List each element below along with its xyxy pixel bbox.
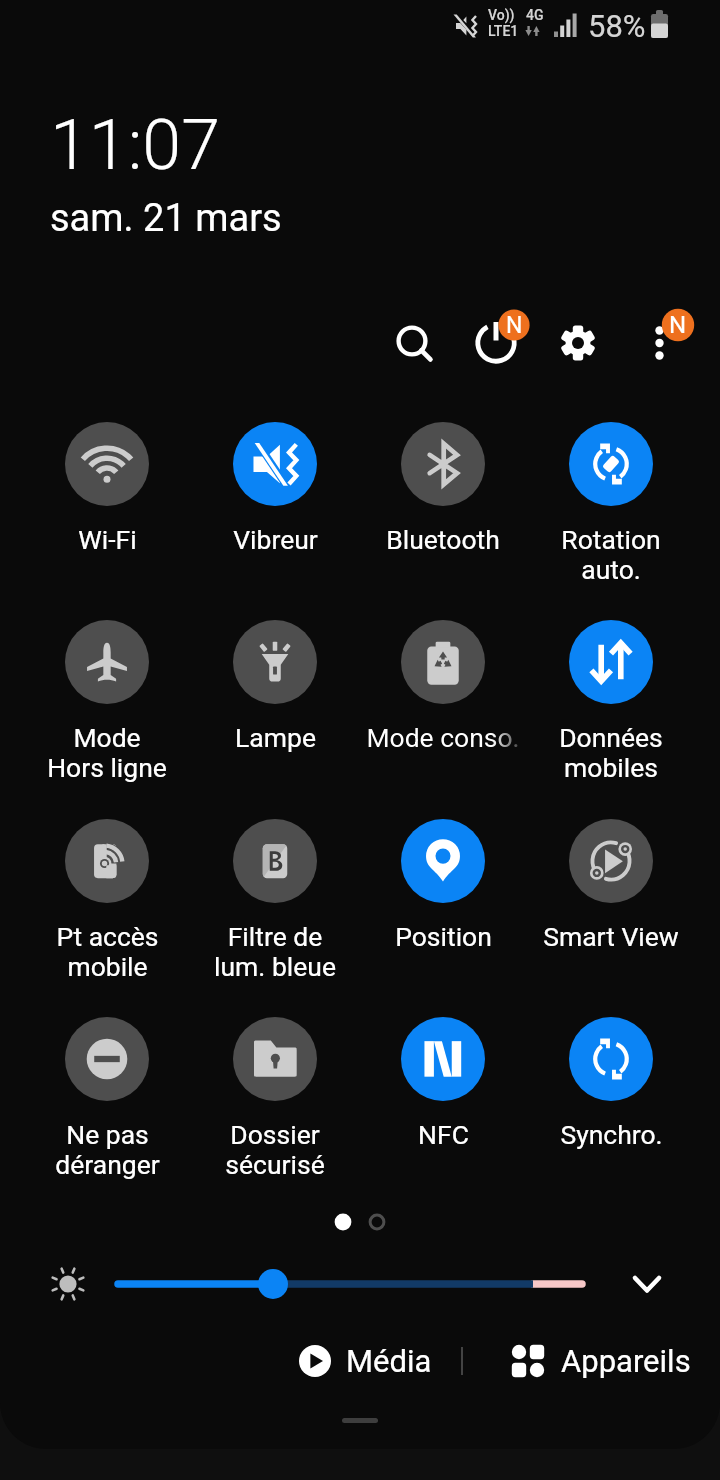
staticText: Synchro. — [560, 1119, 663, 1150]
staticText: Vo)) — [488, 7, 515, 23]
staticText: Pt accès mobile — [56, 921, 159, 982]
button[interactable]: Données mobiles — [527, 620, 695, 783]
staticText: Bluetooth — [386, 524, 500, 555]
staticText: LTE1 — [488, 23, 519, 39]
staticText: sam. 21 mars — [50, 196, 282, 241]
button[interactable]: Luminosité — [100, 1254, 600, 1314]
button[interactable]: Paramètres — [554, 319, 602, 367]
button[interactable]: NFC — [359, 1017, 527, 1150]
staticText: Dossier sécurisé — [225, 1119, 325, 1180]
button[interactable]: Mode conso. — [359, 620, 527, 753]
button[interactable]: Ne pas déranger — [23, 1017, 191, 1180]
button[interactable]: Wi-Fi — [23, 422, 191, 555]
button[interactable]: Bluetooth — [359, 422, 527, 555]
button[interactable]: Smart View — [527, 819, 695, 952]
staticText: Mode conso. — [366, 722, 520, 753]
button[interactable]: Rotation auto. — [527, 422, 695, 585]
button[interactable]: Synchro. — [527, 1017, 695, 1150]
staticText: Lampe — [235, 722, 316, 753]
button[interactable]: Développer — [620, 1254, 676, 1310]
button[interactable]: Vibreur — [191, 422, 359, 555]
staticText: N — [506, 312, 523, 339]
staticText: Mode Hors ligne — [47, 722, 167, 783]
staticText: Rotation auto. — [561, 524, 661, 585]
staticText: NFC — [418, 1119, 469, 1150]
button[interactable]: Média — [299, 1343, 432, 1379]
staticText: Filtre de lum. bleue — [214, 921, 336, 982]
staticText: 58% — [588, 8, 646, 44]
button[interactable]: Mode Hors ligne — [23, 620, 191, 783]
staticText: Appareils — [561, 1343, 691, 1379]
staticText: Wi-Fi — [78, 524, 137, 555]
button[interactable]: Rechercher — [388, 317, 436, 365]
staticText: Position — [395, 921, 492, 952]
staticText: Média — [346, 1343, 432, 1379]
staticText: 4G — [526, 7, 544, 23]
staticText: N — [669, 311, 687, 339]
button[interactable]: Lampe — [191, 620, 359, 753]
staticText: 11:07 — [50, 104, 221, 186]
staticText: Smart View — [543, 921, 679, 952]
button[interactable]: Filtre de lum. bleue — [191, 819, 359, 982]
staticText: Ne pas déranger — [55, 1119, 160, 1180]
staticText: Vibreur — [233, 524, 318, 555]
button[interactable]: Pt accès mobile — [23, 819, 191, 982]
button[interactable]: Éteindre — [472, 319, 520, 367]
button[interactable]: Dossier sécurisé — [191, 1017, 359, 1180]
button[interactable]: Plus d'options — [636, 319, 684, 367]
staticText: Données mobiles — [559, 722, 663, 783]
button[interactable]: Appareils — [511, 1343, 691, 1379]
button[interactable]: Position — [359, 819, 527, 952]
